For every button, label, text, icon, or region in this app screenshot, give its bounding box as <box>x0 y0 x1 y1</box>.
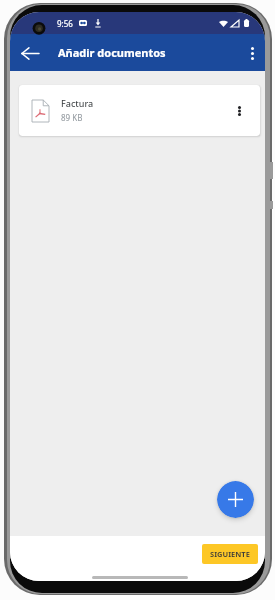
staticText: 89 KB <box>61 112 83 123</box>
button[interactable]: Add document <box>217 481 254 518</box>
staticText: 9:56 <box>57 18 73 29</box>
staticText: SIGUIENTE <box>210 549 250 559</box>
button[interactable]: Factura <box>19 85 260 136</box>
staticText: Añadir documentos <box>58 45 166 60</box>
button[interactable]: Back <box>10 34 47 71</box>
button[interactable]: More options <box>228 34 265 71</box>
button[interactable]: SIGUIENTE <box>202 544 258 564</box>
staticText: Factura <box>61 97 94 109</box>
button[interactable]: Document options <box>224 96 254 126</box>
